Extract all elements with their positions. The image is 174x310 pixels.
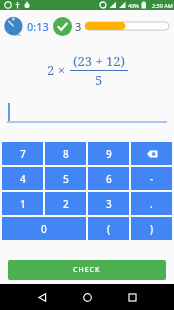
- staticText: 9: [106, 147, 112, 161]
- button[interactable]: [110, 284, 155, 310]
- staticText: 5: [63, 172, 69, 186]
- staticText: 6: [106, 172, 112, 186]
- button[interactable]: 1: [2, 192, 43, 215]
- staticText: 2: [63, 197, 69, 211]
- staticText: (23 + 12): [73, 52, 126, 70]
- staticText: -: [150, 172, 154, 186]
- staticText: 0:13: [27, 19, 49, 34]
- button[interactable]: .: [131, 192, 172, 215]
- button[interactable]: [131, 142, 172, 165]
- staticText: 8: [63, 147, 69, 161]
- staticText: ): [150, 222, 154, 236]
- button[interactable]: 3: [88, 192, 129, 215]
- button[interactable]: 6: [88, 167, 129, 190]
- button[interactable]: 8: [45, 142, 86, 165]
- staticText: 5: [95, 71, 103, 89]
- staticText: 2 ×: [47, 61, 65, 79]
- staticText: 3: [75, 19, 82, 34]
- button[interactable]: ): [131, 217, 172, 240]
- staticText: CHECK: [73, 265, 101, 275]
- button[interactable]: -: [131, 167, 172, 190]
- staticText: 1: [20, 197, 26, 211]
- staticText: 4: [20, 172, 26, 186]
- button[interactable]: 7: [2, 142, 43, 165]
- button[interactable]: 2: [45, 192, 86, 215]
- staticText: 7: [20, 147, 26, 161]
- button[interactable]: 9: [88, 142, 129, 165]
- staticText: 40%: [128, 2, 139, 9]
- staticText: 0: [41, 222, 47, 236]
- button[interactable]: [65, 284, 110, 310]
- button[interactable]: 0: [2, 217, 86, 240]
- staticText: .: [150, 197, 153, 211]
- button[interactable]: 4: [2, 167, 43, 190]
- button[interactable]: (: [88, 217, 129, 240]
- button[interactable]: CHECK: [8, 260, 166, 280]
- button[interactable]: 5: [45, 167, 86, 190]
- staticText: 2:39 AM: [152, 2, 173, 9]
- button[interactable]: [20, 284, 65, 310]
- staticText: (: [107, 222, 111, 236]
- staticText: 3: [106, 197, 112, 211]
